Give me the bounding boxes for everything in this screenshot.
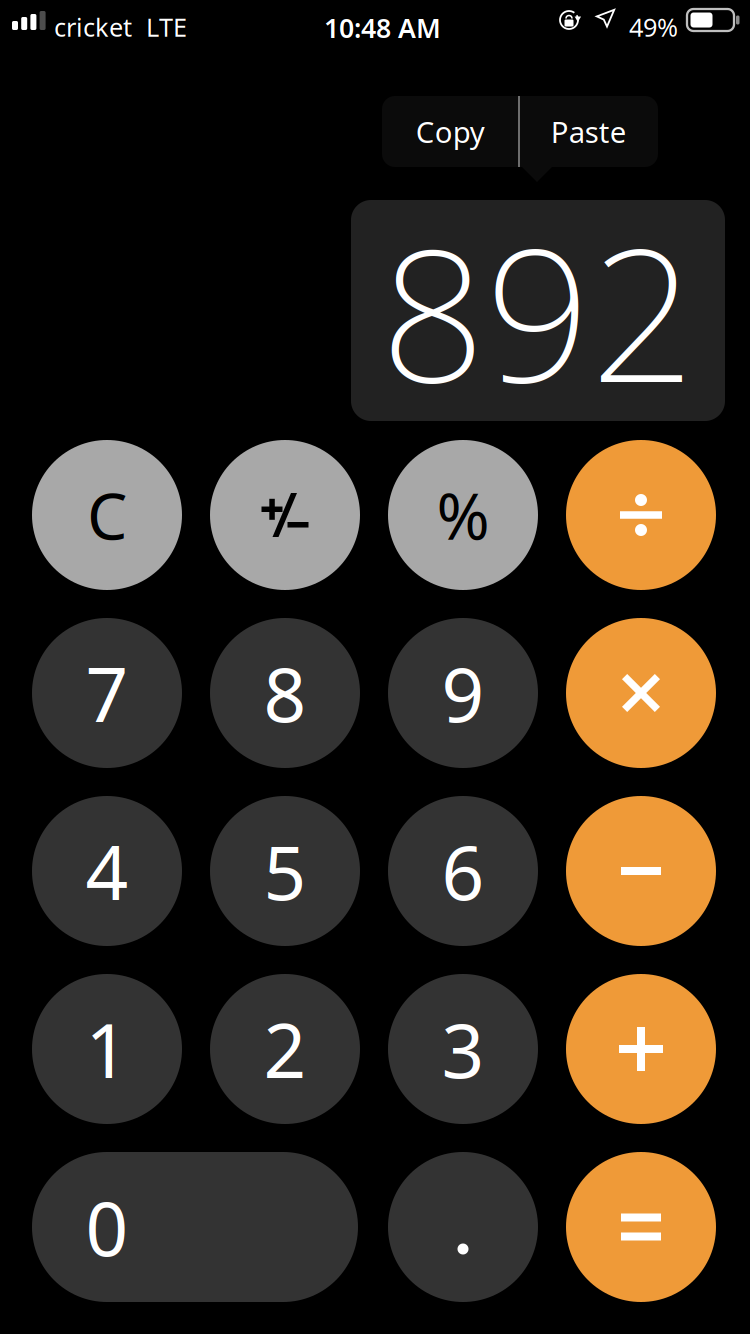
staticText: 3	[441, 999, 484, 1099]
staticText: 6	[441, 821, 484, 921]
button[interactable]: 8	[210, 618, 360, 768]
staticText: 10:48 AM	[324, 10, 441, 45]
staticText: 8	[263, 643, 306, 743]
button[interactable]: Decimal point	[388, 1152, 538, 1302]
button[interactable]: Multiply	[566, 618, 716, 768]
button[interactable]: %	[388, 440, 538, 590]
button[interactable]: Copy	[382, 96, 518, 167]
button[interactable]: 4	[32, 796, 182, 946]
button[interactable]: 7	[32, 618, 182, 768]
button[interactable]: 0	[32, 1152, 358, 1302]
button[interactable]	[210, 440, 360, 590]
button[interactable]: 5	[210, 796, 360, 946]
staticText: cricket	[54, 10, 132, 44]
button[interactable]: 3	[388, 974, 538, 1124]
staticText: 892	[380, 188, 695, 433]
staticText: 7	[85, 643, 128, 743]
button[interactable]: Paste	[520, 96, 658, 167]
staticText: %	[436, 472, 489, 557]
staticText: 49%	[629, 10, 678, 44]
button[interactable]: 1	[32, 974, 182, 1124]
staticText: 9	[441, 643, 484, 743]
staticText: C	[87, 472, 127, 557]
staticText: Copy	[416, 112, 485, 151]
staticText: 2	[263, 999, 306, 1099]
button[interactable]: Divide	[566, 440, 716, 590]
staticText: 5	[263, 821, 306, 921]
button[interactable]: 9	[388, 618, 538, 768]
staticText: 0	[85, 1177, 128, 1277]
staticText: Paste	[551, 112, 627, 151]
staticText: 4	[85, 821, 128, 921]
button[interactable]: Equals	[566, 1152, 716, 1302]
button[interactable]: 6	[388, 796, 538, 946]
staticText: 1	[85, 999, 128, 1099]
button[interactable]: Plus	[566, 974, 716, 1124]
button[interactable]: Minus	[566, 796, 716, 946]
staticText: LTE	[146, 10, 187, 44]
button[interactable]: 2	[210, 974, 360, 1124]
button[interactable]: C	[32, 440, 182, 590]
